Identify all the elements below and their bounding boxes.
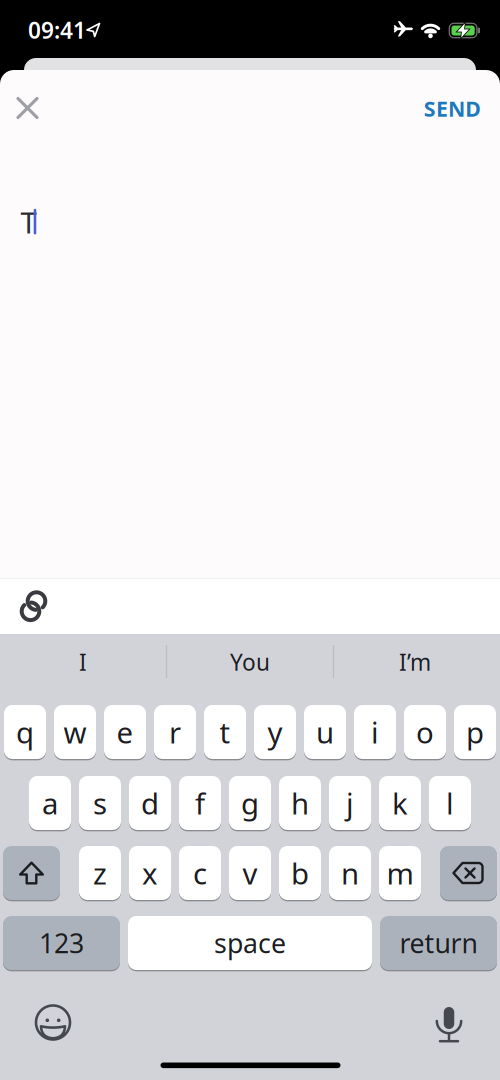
button[interactable]: [440, 845, 497, 901]
staticText: p: [466, 712, 484, 751]
button[interactable]: v: [229, 845, 271, 901]
button[interactable]: w: [54, 704, 96, 760]
button[interactable]: d: [129, 775, 171, 831]
staticText: T: [21, 202, 37, 241]
staticText: w: [63, 712, 86, 751]
staticText: j: [346, 783, 354, 822]
staticText: s: [93, 783, 107, 822]
button[interactable]: k: [379, 775, 421, 831]
staticText: g: [241, 783, 259, 822]
button[interactable]: a: [29, 775, 71, 831]
button[interactable]: j: [329, 775, 371, 831]
staticText: You: [230, 647, 270, 677]
button[interactable]: 123: [3, 915, 120, 971]
staticText: q: [16, 712, 34, 751]
button[interactable]: n: [329, 845, 371, 901]
button[interactable]: [13, 586, 53, 626]
button[interactable]: e: [104, 704, 146, 760]
staticText: x: [142, 853, 158, 892]
staticText: 123: [39, 925, 84, 961]
button[interactable]: h: [279, 775, 321, 831]
button[interactable]: SEND: [412, 88, 492, 128]
staticText: b: [291, 853, 309, 892]
button[interactable]: q: [4, 704, 46, 760]
staticText: i: [371, 712, 379, 751]
staticText: m: [386, 853, 413, 892]
staticText: k: [392, 783, 408, 822]
staticText: o: [416, 712, 434, 751]
staticText: a: [42, 783, 58, 822]
staticText: z: [93, 853, 107, 892]
button[interactable]: o: [404, 704, 446, 760]
button[interactable]: You: [180, 642, 320, 682]
button[interactable]: [3, 845, 60, 901]
button[interactable]: [34, 1003, 72, 1041]
staticText: SEND: [424, 94, 481, 123]
button[interactable]: r: [154, 704, 196, 760]
staticText: c: [193, 853, 207, 892]
button[interactable]: l: [429, 775, 471, 831]
button[interactable]: g: [229, 775, 271, 831]
button[interactable]: I’m: [345, 642, 485, 682]
button[interactable]: space: [128, 915, 372, 971]
staticText: d: [141, 783, 159, 822]
button[interactable]: y: [254, 704, 296, 760]
button[interactable]: x: [129, 845, 171, 901]
button[interactable]: [424, 996, 474, 1046]
staticText: v: [242, 853, 257, 892]
button[interactable]: t: [204, 704, 246, 760]
button[interactable]: return: [380, 915, 497, 971]
staticText: r: [169, 712, 181, 751]
staticText: return: [399, 925, 477, 961]
staticText: l: [446, 783, 454, 822]
button[interactable]: p: [454, 704, 496, 760]
staticText: n: [341, 853, 359, 892]
staticText: I: [79, 647, 87, 677]
staticText: f: [195, 783, 205, 822]
staticText: h: [291, 783, 309, 822]
staticText: y: [267, 712, 282, 751]
staticText: 09:41: [28, 15, 86, 45]
button[interactable]: I: [13, 642, 153, 682]
button[interactable]: [7, 88, 47, 128]
staticText: space: [214, 925, 286, 961]
button[interactable]: u: [304, 704, 346, 760]
staticText: t: [219, 712, 230, 751]
button[interactable]: s: [79, 775, 121, 831]
staticText: e: [116, 712, 133, 751]
staticText: I’m: [399, 647, 431, 677]
button[interactable]: m: [379, 845, 421, 901]
button[interactable]: z: [79, 845, 121, 901]
button[interactable]: b: [279, 845, 321, 901]
button[interactable]: f: [179, 775, 221, 831]
button[interactable]: i: [354, 704, 396, 760]
button[interactable]: c: [179, 845, 221, 901]
staticText: u: [316, 712, 334, 751]
